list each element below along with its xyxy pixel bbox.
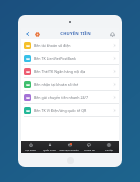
- staticText: Cài đặt: [105, 148, 113, 151]
- button[interactable]: Giao dịch chuyển: [59, 141, 79, 153]
- staticText: Bên tài khoản số điện: [34, 43, 111, 48]
- staticText: Giao dịch chuyển: [59, 148, 79, 151]
- button[interactable]: Menu: [33, 30, 41, 38]
- button[interactable]: Bên gửi chuyển tiền nhanh 24/7: [21, 91, 119, 103]
- button[interactable]: Bên nhận tại khoản số thẻ: [21, 78, 119, 90]
- button[interactable]: Bên TK LienVietPostBank: [21, 52, 119, 64]
- staticText: Quản lý ĐG: [43, 148, 56, 151]
- staticText: Bên Thẻ/TK Ngân hàng nội địa: [34, 69, 111, 74]
- button[interactable]: Nội dung: [21, 141, 40, 153]
- staticText: Nội dung: [25, 148, 36, 151]
- staticText: Thông tin: [84, 148, 95, 151]
- staticText: CHUYỂN TIỀN: [60, 31, 91, 37]
- button[interactable]: Bên tài khoản số điện: [21, 39, 119, 51]
- button[interactable]: Bên TK Ví Điện/ứng quốc tế QR: [21, 104, 119, 116]
- staticText: Bên TK Ví Điện/ứng quốc tế QR: [34, 108, 111, 113]
- button[interactable]: Notifications: [108, 30, 116, 38]
- button[interactable]: Bên Thẻ/TK Ngân hàng nội địa: [21, 65, 119, 77]
- staticText: Bên nhận tại khoản số thẻ: [34, 82, 111, 87]
- staticText: Bên TK LienVietPostBank: [34, 56, 111, 61]
- button[interactable]: Thông tin: [79, 141, 99, 153]
- button[interactable]: Cài đặt: [99, 141, 119, 153]
- staticText: Bên gửi chuyển tiền nhanh 24/7: [34, 95, 111, 100]
- button[interactable]: Quản lý ĐG: [40, 141, 59, 153]
- button[interactable]: Back: [24, 30, 32, 38]
